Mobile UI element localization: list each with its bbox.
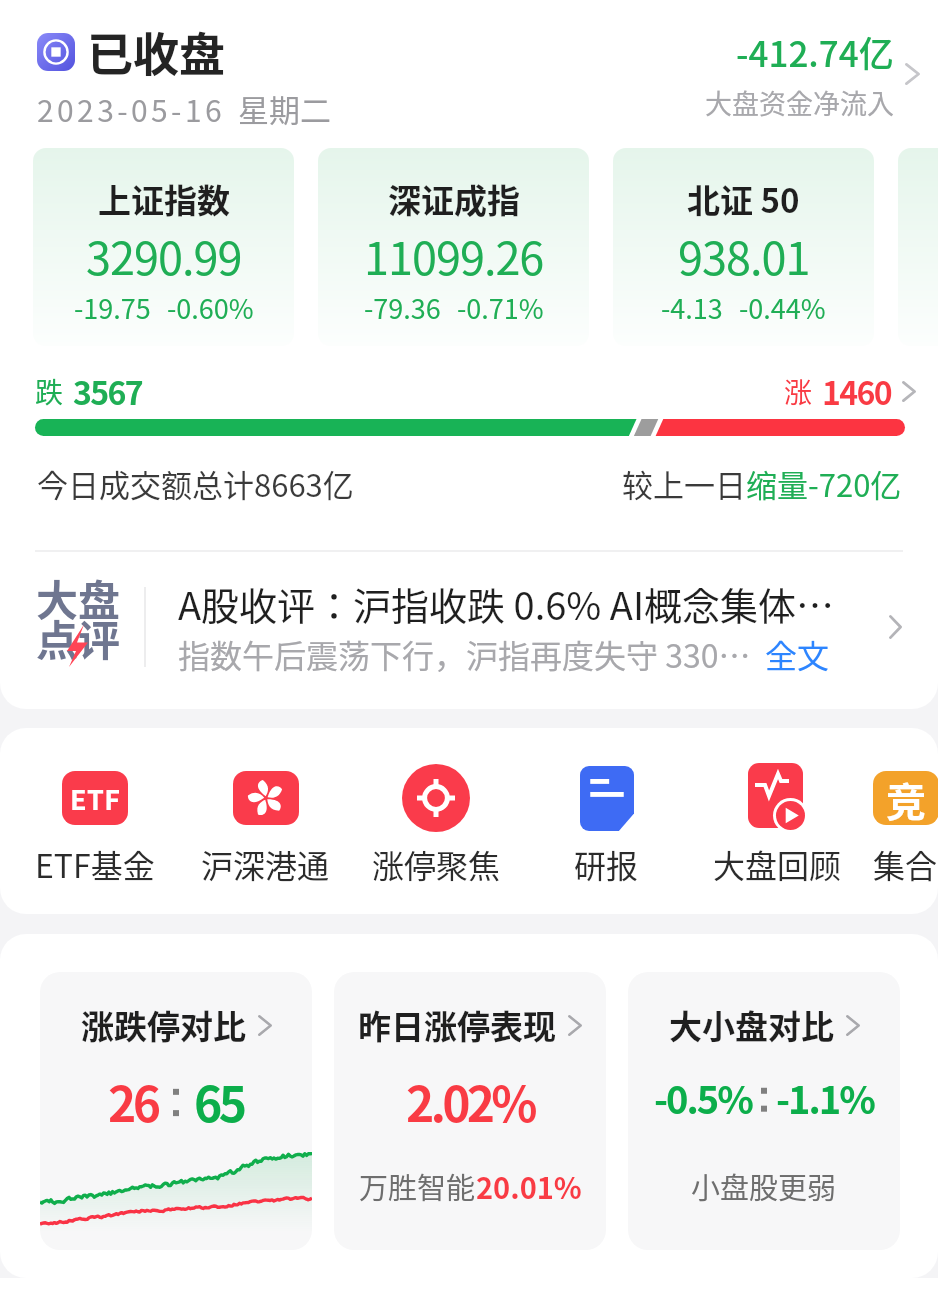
staticText: 大小盘对比 [669, 1001, 834, 1049]
staticText: -1.1% [776, 1070, 874, 1125]
staticText: 65 [194, 1066, 244, 1136]
staticText: 大盘 [36, 567, 121, 628]
staticText: -0.44% [739, 288, 826, 327]
staticText: ETF [70, 779, 121, 818]
button[interactable]: ETF [10, 728, 180, 914]
staticText: 北证 50 [687, 175, 800, 223]
staticText: 星期二 [238, 86, 331, 131]
staticText: 今日成交额总计8663亿 [37, 461, 354, 506]
staticText: -4.13 [661, 288, 723, 327]
staticText: 上证指数 [98, 175, 230, 223]
staticText: -0.71% [457, 288, 544, 327]
staticText: 20.01% [476, 1165, 582, 1207]
staticText: 集合 [873, 841, 938, 887]
staticText: 深证成指 [388, 175, 520, 223]
staticText: 沪深港通 [201, 841, 330, 887]
staticText: 11099.26 [364, 223, 544, 288]
button[interactable]: 大小盘对比 [628, 972, 900, 1250]
staticText: 涨跌停对比 [81, 1001, 246, 1049]
staticText: -79.36 [364, 288, 441, 327]
button[interactable]: 跌 [0, 368, 938, 414]
staticText: 缩量 [746, 461, 808, 506]
staticText: -412.74亿 [736, 26, 894, 77]
staticText: 全文 [765, 631, 830, 677]
staticText: -0.5% [654, 1070, 752, 1125]
staticText: 小盘股更弱 [691, 1165, 837, 1207]
staticText: -720亿 [808, 461, 902, 506]
staticText: 已收盘 [87, 18, 225, 85]
staticText: 昨日涨停表现 [358, 1001, 556, 1049]
staticText: 938.01 [678, 223, 810, 288]
staticText: 2023-05-16 [37, 87, 226, 130]
staticText: 大盘资金净流入 [705, 83, 894, 122]
button[interactable]: 上证指数 [33, 148, 294, 346]
button[interactable]: 竞 [863, 728, 938, 914]
staticText: 涨 [784, 371, 813, 412]
staticText: 较上一日 [622, 461, 746, 506]
button[interactable]: 大盘回顾 [692, 728, 863, 914]
staticText: 指数午后震荡下行，沪指再度失守 330… [178, 631, 751, 677]
staticText: 万胜智能 [359, 1165, 476, 1207]
staticText: 大盘回顾 [713, 841, 842, 887]
staticText: 2.02% [406, 1066, 534, 1136]
button[interactable]: 北证 50 [613, 148, 874, 346]
staticText: 竞 [886, 771, 926, 825]
button[interactable]: 大盘 [0, 576, 938, 677]
button[interactable]: -412.74亿 [705, 18, 938, 122]
staticText: -19.75 [74, 288, 151, 327]
button[interactable]: 昨日涨停表现 [334, 972, 606, 1250]
button[interactable]: 沪深港通 [180, 728, 351, 914]
staticText: -0.60% [167, 288, 254, 327]
button[interactable]: 涨停聚焦 [351, 728, 521, 914]
button[interactable]: 涨跌停对比 [40, 972, 312, 1250]
staticText: ETF基金 [35, 841, 155, 887]
staticText: 点评 [36, 607, 121, 668]
button[interactable]: 深证成指 [318, 148, 589, 346]
staticText: 3290.99 [86, 223, 242, 288]
staticText: 研报 [574, 841, 639, 887]
staticText: 3567 [73, 368, 143, 414]
button[interactable]: 研报 [521, 728, 692, 914]
staticText: 1460 [822, 368, 892, 414]
staticText: 涨停聚焦 [372, 841, 501, 887]
staticText: 跌 [35, 371, 64, 412]
staticText: A股收评：沪指收跌 0.6% AI概念集体… [178, 576, 835, 631]
staticText: 26 [108, 1066, 158, 1136]
